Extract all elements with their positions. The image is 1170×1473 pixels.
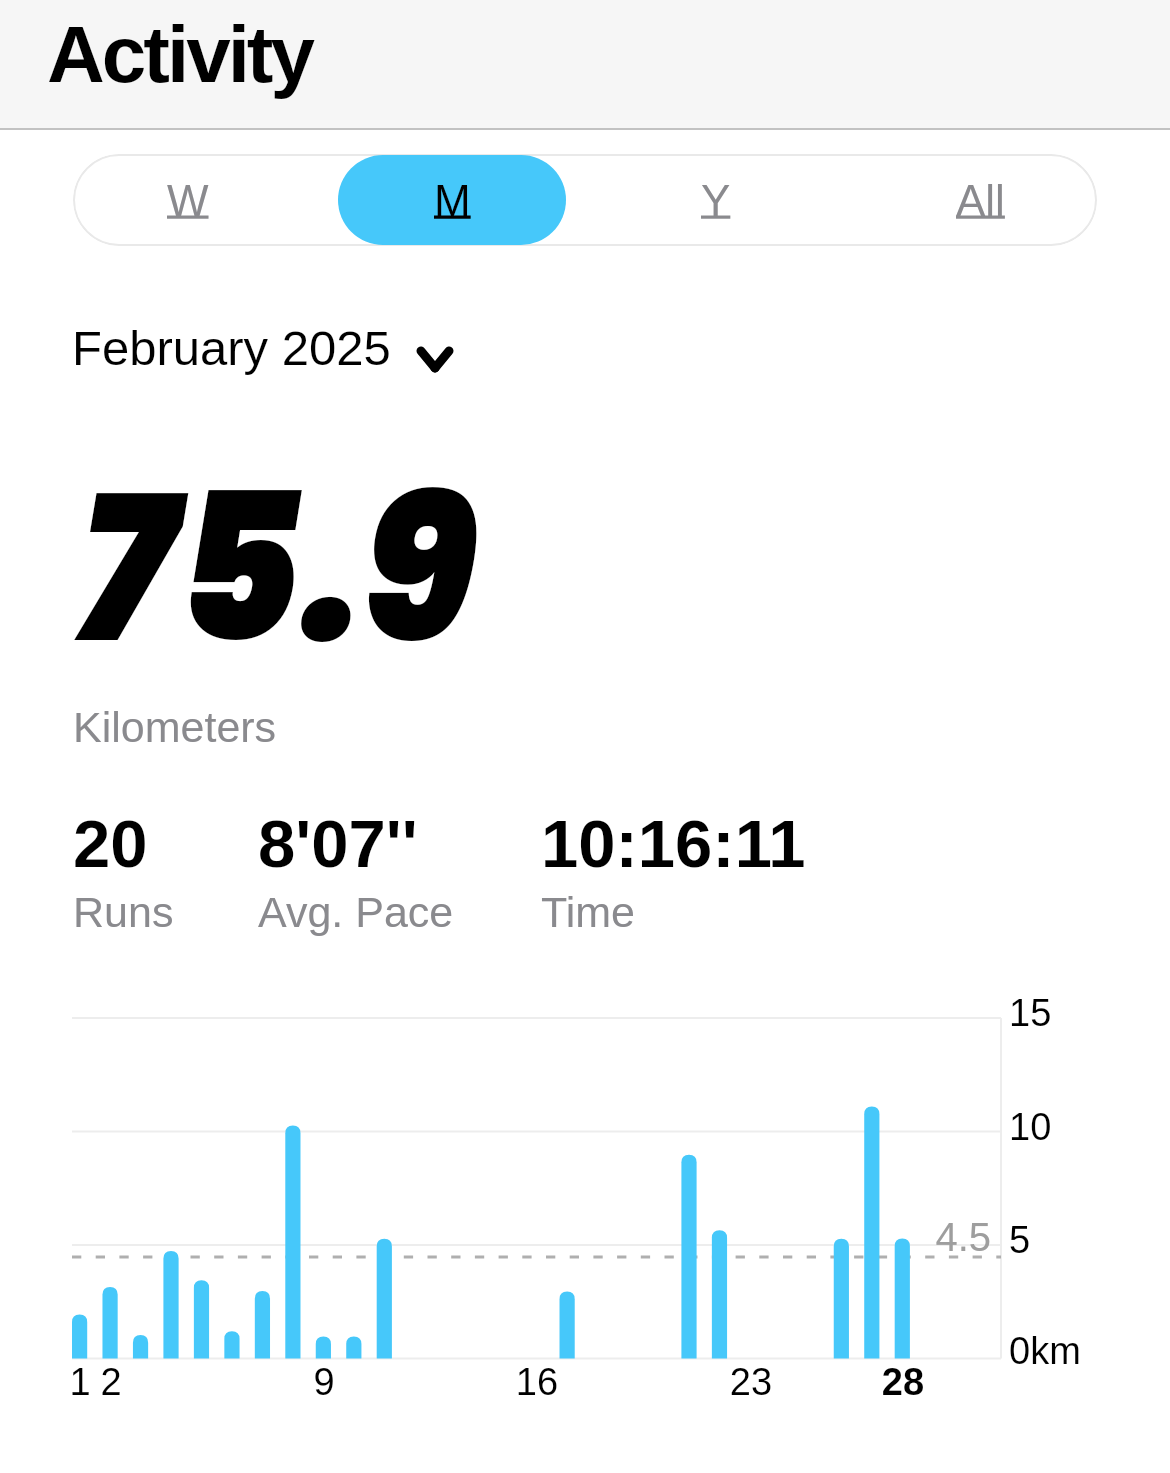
staticText: 1 [40, 1361, 120, 1403]
staticText: Activity [47, 10, 312, 99]
staticText: Avg. Pace [258, 888, 454, 936]
staticText: 9 [284, 1361, 364, 1403]
staticText: Kilometers [73, 703, 277, 751]
staticText: 15 [1009, 992, 1052, 1034]
button[interactable]: Y [584, 155, 848, 245]
staticText: 10 [1009, 1106, 1052, 1148]
staticText: 8'07'' [258, 806, 418, 881]
button[interactable]: M [338, 155, 566, 245]
staticText: 2 [71, 1361, 151, 1403]
staticText: 16 [497, 1361, 577, 1403]
staticText: Y [701, 176, 731, 225]
staticText: All [956, 176, 1005, 225]
staticText: Time [541, 888, 635, 936]
other: Change period [417, 347, 453, 372]
button[interactable]: All [848, 155, 1112, 245]
staticText: 4.5 [901, 1215, 991, 1260]
staticText: M [434, 176, 471, 225]
staticText: 20 [73, 806, 148, 881]
button[interactable]: W [56, 155, 320, 245]
button[interactable]: February 2025 [72, 321, 453, 376]
staticText: 23 [711, 1361, 791, 1403]
staticText: 75.9 [78, 425, 477, 712]
staticText: February 2025 [72, 321, 391, 376]
staticText: Runs [73, 888, 174, 936]
staticText: W [167, 176, 209, 225]
staticText: 5 [1009, 1219, 1031, 1261]
staticText: 28 [863, 1361, 943, 1403]
staticText: 0km [1009, 1330, 1081, 1372]
staticText: 10:16:11 [541, 806, 806, 881]
